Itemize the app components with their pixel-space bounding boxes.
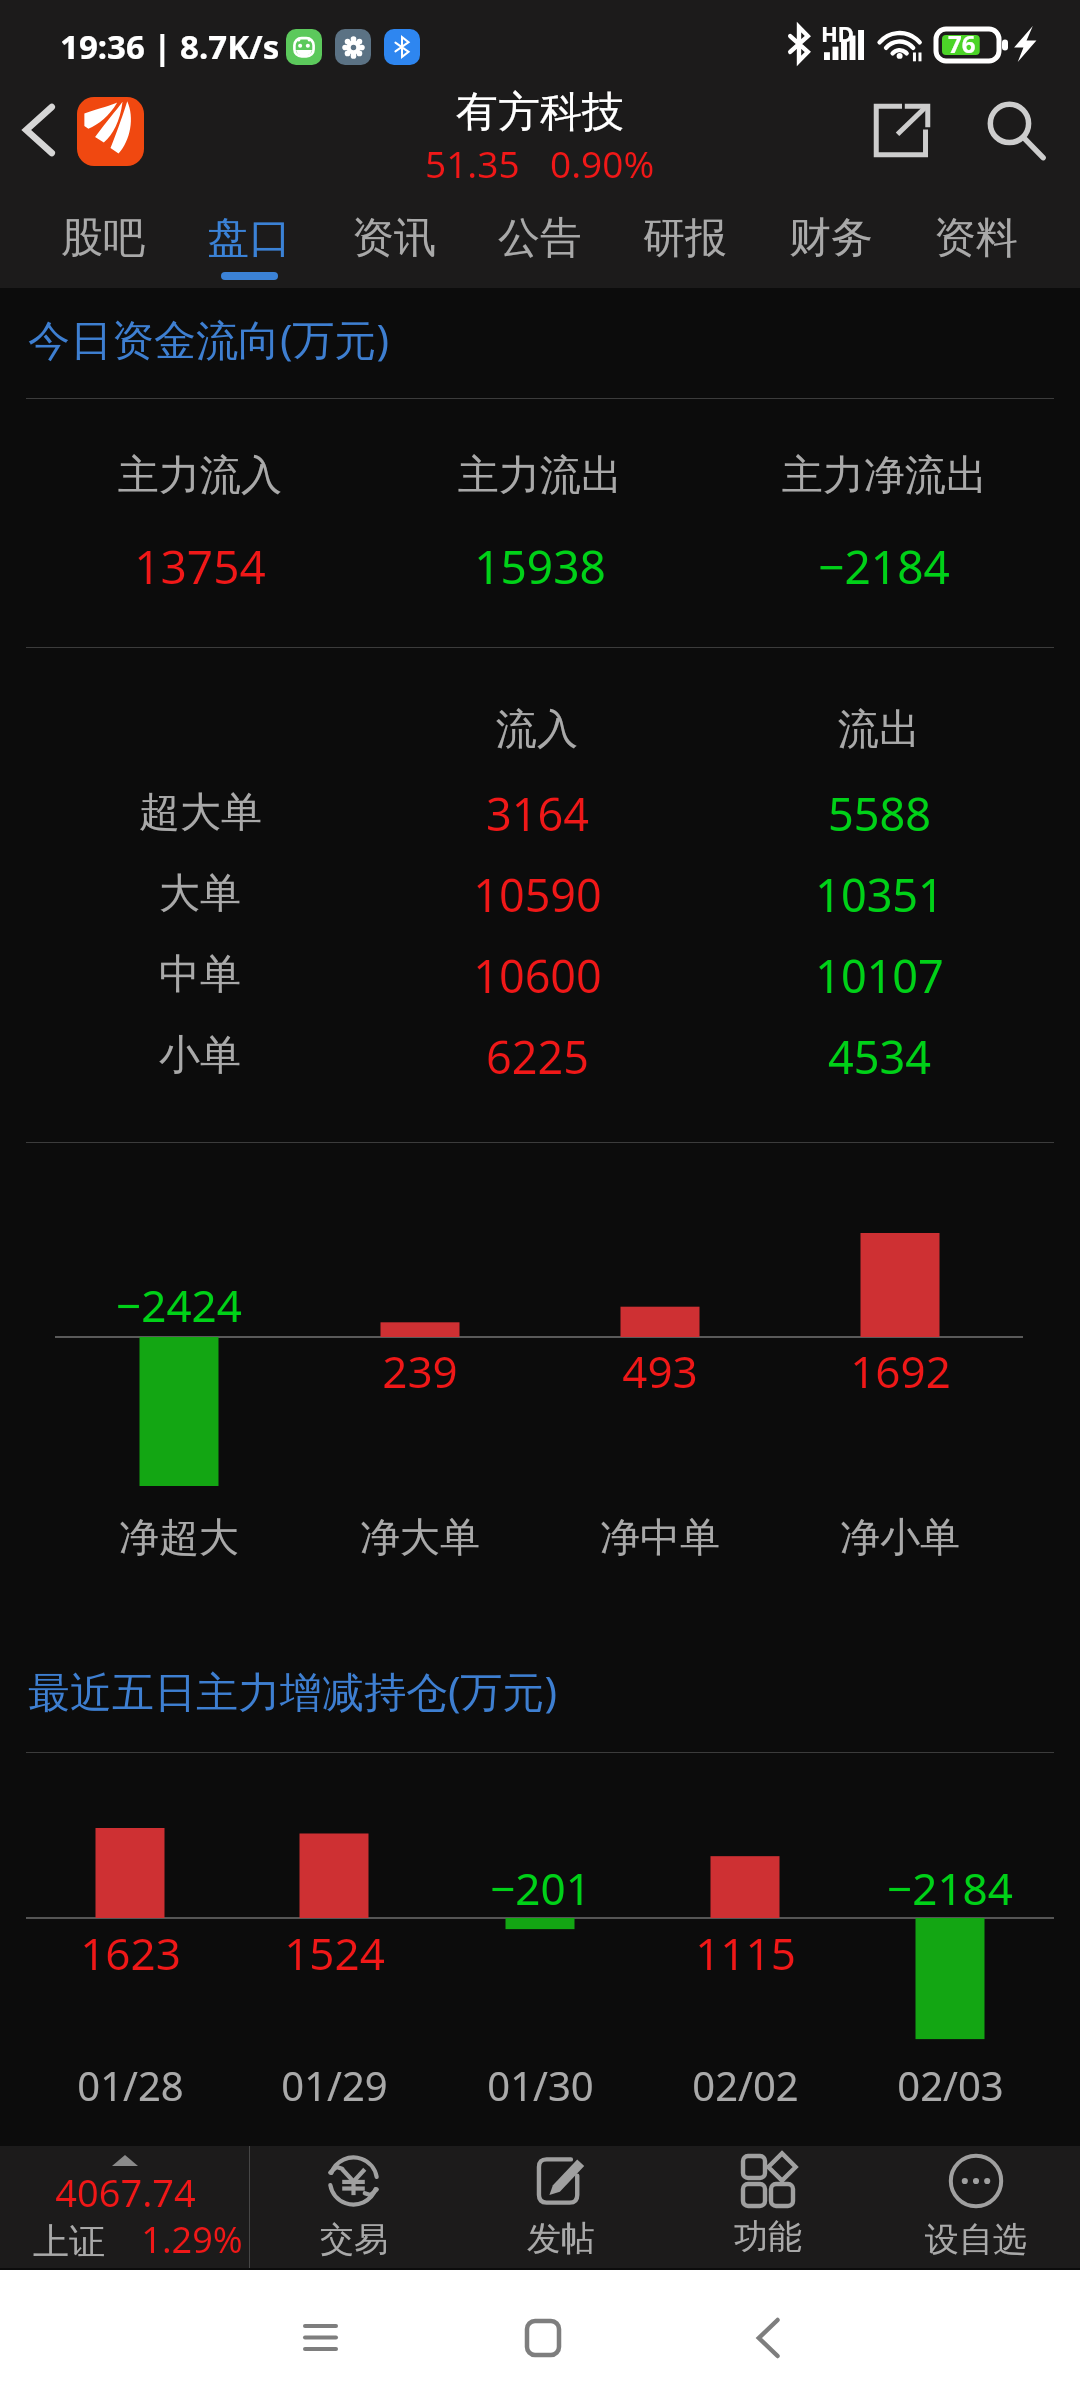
staticText: 净超大 <box>119 1512 239 1562</box>
button[interactable]: App logo <box>77 97 144 166</box>
button[interactable]: Search <box>967 93 1067 193</box>
staticText: 公告 <box>498 212 582 265</box>
staticText: 设自选 <box>925 2218 1027 2261</box>
staticText: 功能 <box>734 2215 802 2258</box>
button[interactable]: Recents <box>250 2270 390 2400</box>
button[interactable]: 盘口 <box>177 193 321 288</box>
staticText: HD <box>821 18 854 48</box>
staticText: 小单 <box>159 1030 241 1082</box>
staticText: 有方科技 <box>456 86 624 139</box>
button[interactable]: 研报 <box>613 193 757 288</box>
button[interactable]: 功能 <box>664 2146 872 2268</box>
staticText: 01/28 <box>77 2058 184 2112</box>
staticText: 13754 <box>134 535 266 598</box>
staticText: 02/03 <box>897 2058 1004 2112</box>
button[interactable]: 资讯 <box>322 193 466 288</box>
staticText: −2424 <box>116 1275 242 1335</box>
button[interactable]: Share <box>852 93 952 193</box>
staticText: 流出 <box>838 704 920 756</box>
staticText: 19:36 | 8.7K/s <box>60 24 280 69</box>
staticText: 10107 <box>815 945 944 1006</box>
staticText: 财务 <box>789 212 873 265</box>
staticText: 76 <box>948 27 976 60</box>
staticText: 02/02 <box>692 2058 799 2112</box>
staticText: 0.90% <box>550 138 655 188</box>
staticText: −201 <box>490 1858 591 1918</box>
staticText: 发帖 <box>527 2217 595 2260</box>
staticText: 51.35 <box>425 138 520 188</box>
staticText: 239 <box>382 1341 458 1401</box>
staticText: 主力流入 <box>118 450 282 502</box>
staticText: 1623 <box>80 1923 181 1983</box>
staticText: 1692 <box>850 1341 951 1401</box>
staticText: 净大单 <box>360 1512 480 1562</box>
staticText: 大单 <box>159 868 241 920</box>
staticText: 493 <box>622 1341 698 1401</box>
button[interactable]: 资料 <box>904 193 1048 288</box>
staticText: 中单 <box>159 949 241 1001</box>
staticText: 01/29 <box>281 2058 388 2112</box>
staticText: 1524 <box>284 1923 385 1983</box>
staticText: 1.29% <box>141 2215 243 2264</box>
staticText: 主力流出 <box>458 450 622 502</box>
staticText: 资料 <box>934 212 1018 265</box>
button[interactable]: 股吧 <box>31 193 175 288</box>
staticText: 流入 <box>496 704 578 756</box>
staticText: 10351 <box>815 864 944 925</box>
button[interactable]: 财务 <box>759 193 903 288</box>
staticText: 10590 <box>473 864 602 925</box>
staticText: 主力净流出 <box>782 450 987 502</box>
staticText: 15938 <box>474 535 606 598</box>
staticText: 净中单 <box>600 1512 720 1562</box>
button[interactable]: 交易 <box>250 2146 457 2268</box>
staticText: 研报 <box>643 212 727 265</box>
staticText: 超大单 <box>139 787 262 839</box>
button[interactable]: 公告 <box>468 193 612 288</box>
button[interactable]: Home <box>473 2270 613 2400</box>
staticText: 1115 <box>695 1923 796 1983</box>
staticText: 交易 <box>320 2218 388 2261</box>
staticText: 4534 <box>828 1026 931 1087</box>
staticText: 3164 <box>486 783 589 844</box>
button[interactable]: Back <box>698 2270 838 2400</box>
staticText: 最近五日主力增减持仓(万元) <box>28 1662 558 1719</box>
button[interactable]: 4067.74 <box>0 2146 250 2268</box>
staticText: 上证 <box>33 2219 105 2264</box>
button[interactable]: 设自选 <box>872 2146 1080 2268</box>
staticText: 资讯 <box>352 212 436 265</box>
staticText: 01/30 <box>487 2058 594 2112</box>
staticText: 6225 <box>486 1026 589 1087</box>
staticText: 盘口 <box>207 212 291 265</box>
staticText: 今日资金流向(万元) <box>28 310 390 367</box>
button[interactable]: Back <box>0 93 78 193</box>
staticText: −2184 <box>887 1858 1013 1918</box>
staticText: 10600 <box>473 945 602 1006</box>
staticText: −2184 <box>818 535 950 598</box>
staticText: 5588 <box>828 783 931 844</box>
staticText: 股吧 <box>61 212 145 265</box>
button[interactable]: 发帖 <box>457 2146 664 2268</box>
staticText: 4067.74 <box>55 2166 196 2218</box>
staticText: 净小单 <box>840 1512 960 1562</box>
